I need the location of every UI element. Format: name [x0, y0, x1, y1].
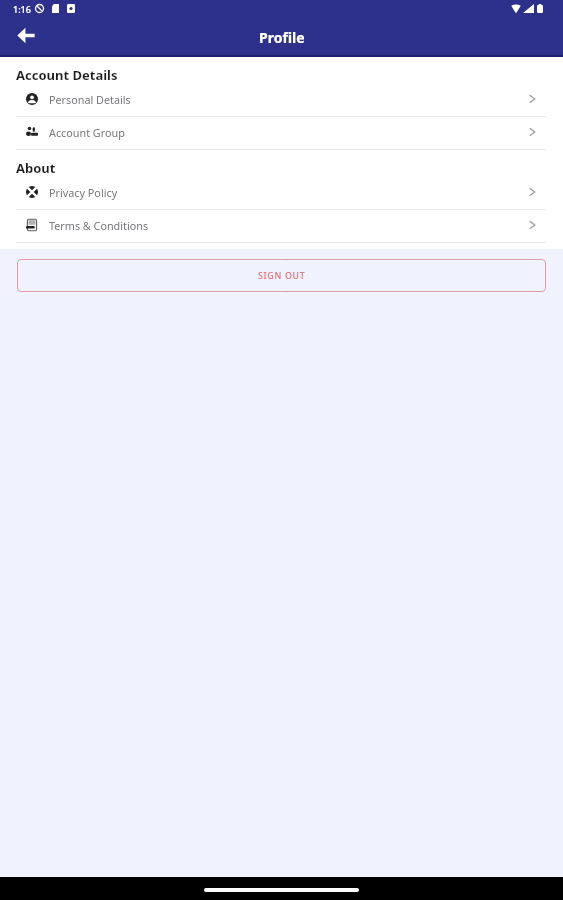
staticText: Account Group: [49, 125, 125, 140]
staticText: Privacy Policy: [49, 185, 118, 200]
button[interactable]: Terms & Conditions: [0, 210, 563, 242]
staticText: 1:16: [13, 3, 31, 15]
staticText: About: [16, 159, 56, 177]
staticText: Terms & Conditions: [49, 218, 149, 233]
staticText: SIGN OUT: [258, 270, 306, 282]
button[interactable]: Back: [10, 19, 42, 51]
staticText: Profile: [259, 28, 305, 47]
button[interactable]: SIGN OUT: [17, 259, 546, 292]
button[interactable]: Personal Details: [0, 84, 563, 116]
button[interactable]: Privacy Policy: [0, 177, 563, 209]
staticText: Account Details: [16, 66, 118, 84]
staticText: Personal Details: [49, 92, 131, 107]
button[interactable]: Account Group: [0, 117, 563, 149]
